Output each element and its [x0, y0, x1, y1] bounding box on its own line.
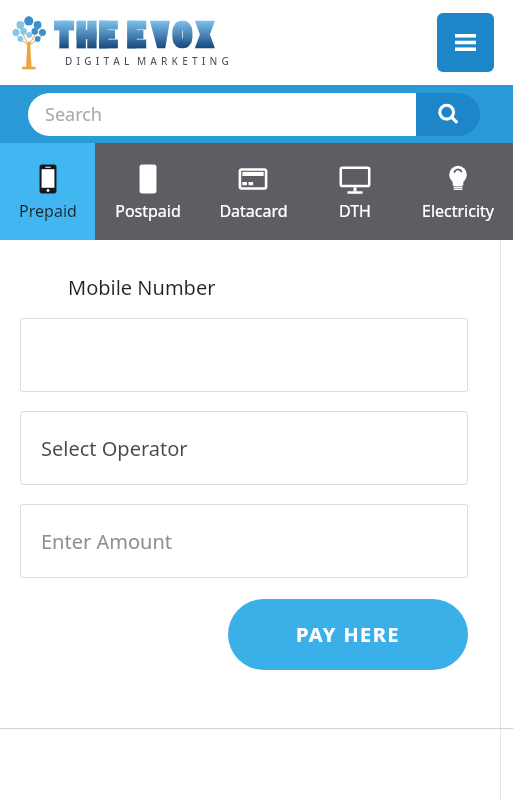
button[interactable]: Postpaid — [95, 143, 200, 240]
button[interactable]: Search — [416, 93, 480, 136]
button[interactable]: Prepaid — [0, 143, 95, 240]
button[interactable]: D I G I T A L M A R K E T I N G — [10, 12, 240, 74]
button[interactable]: Search — [28, 93, 480, 136]
staticText: Prepaid — [19, 200, 77, 222]
button[interactable]: Datacard — [200, 143, 306, 240]
button[interactable]: Electricity — [403, 143, 513, 240]
button[interactable]: Open navigation menu — [437, 13, 494, 72]
button[interactable] — [20, 318, 468, 392]
staticText: Datacard — [219, 200, 288, 222]
button[interactable]: Enter Amount — [20, 504, 468, 578]
staticText: DTH — [339, 200, 371, 222]
staticText: Select Operator — [41, 435, 188, 462]
button[interactable]: Select Operator — [20, 411, 468, 485]
staticText: Electricity — [422, 200, 494, 222]
button[interactable]: DTH — [306, 143, 403, 240]
staticText: Search — [45, 102, 102, 127]
staticText: Postpaid — [115, 200, 181, 222]
staticText: Mobile Number — [68, 274, 216, 301]
staticText: PAY HERE — [296, 621, 400, 648]
button[interactable]: PAY HERE — [228, 599, 468, 670]
staticText: D I G I T A L M A R K E T I N G — [65, 54, 230, 68]
staticText: Enter Amount — [41, 528, 172, 555]
